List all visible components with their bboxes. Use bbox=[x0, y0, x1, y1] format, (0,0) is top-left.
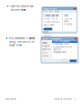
staticText: Setup guide bbox=[5, 98, 16, 101]
staticText: Documentation set bbox=[53, 46, 72, 48]
staticText: Options apply bbox=[64, 17, 72, 23]
staticText: Pick components in bbox=[9, 37, 28, 40]
staticText: Edit bbox=[49, 10, 53, 13]
staticText: Info bbox=[64, 14, 68, 17]
staticText: target folder. bbox=[9, 44, 23, 47]
staticText: Developer tools bbox=[53, 43, 69, 46]
staticText: Plugins bbox=[42, 45, 49, 47]
staticText: Select bbox=[29, 37, 35, 40]
staticText: Setup Wizard bbox=[43, 7, 56, 10]
staticText: Docs bbox=[42, 51, 47, 54]
staticText: then press bbox=[10, 8, 20, 11]
staticText: Installation notes bbox=[53, 98, 71, 101]
staticText: Samples bbox=[53, 48, 61, 51]
staticText: Open the installer and bbox=[10, 5, 33, 8]
staticText: Core components bbox=[53, 40, 70, 43]
staticText: Install for all bbox=[43, 17, 58, 20]
staticText: View bbox=[54, 10, 59, 13]
staticText: Runtime bbox=[42, 48, 50, 51]
staticText: Language pack bbox=[53, 51, 66, 53]
staticText: Add to path bbox=[43, 24, 54, 26]
staticText: Choose options bbox=[43, 14, 58, 17]
staticText: Details bbox=[43, 35, 51, 37]
staticText: to setup bbox=[64, 23, 72, 26]
staticText: Extras bbox=[42, 55, 48, 57]
staticText: File bbox=[43, 10, 47, 13]
staticText: Advanced bbox=[43, 32, 51, 34]
staticText: Select Components bbox=[42, 37, 61, 40]
staticText: 4 bbox=[74, 98, 75, 101]
staticText: Tools bbox=[42, 42, 47, 44]
staticText: dialog, then confirm the bbox=[9, 40, 34, 43]
staticText: Next bbox=[21, 8, 26, 11]
staticText: Ready bbox=[43, 31, 48, 33]
staticText: Create shortcut bbox=[43, 21, 59, 23]
